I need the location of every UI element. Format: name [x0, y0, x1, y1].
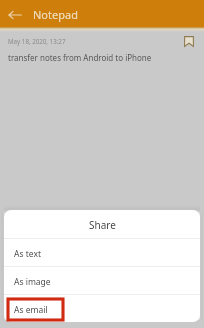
button[interactable]: As image [4, 267, 200, 294]
button[interactable]: As text [4, 239, 200, 266]
staticText: As image [14, 276, 51, 288]
staticText: Notepad [33, 7, 78, 22]
button[interactable]: Back [2, 1, 28, 27]
staticText: May 18, 2020, 13:27 [8, 37, 66, 45]
button[interactable]: As email [4, 295, 200, 322]
button[interactable]: May 18, 2020, 13:27 [0, 32, 204, 68]
staticText: transfer notes from Android to iPhone [8, 52, 152, 63]
staticText: As text [14, 248, 41, 260]
button[interactable]: Bookmark [181, 33, 197, 49]
staticText: As email [14, 304, 48, 316]
staticText: Share [89, 218, 116, 232]
